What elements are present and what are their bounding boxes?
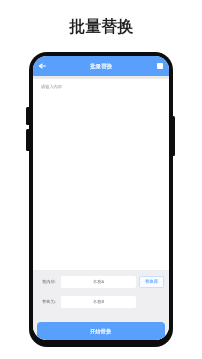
button[interactable]: Back <box>36 60 48 72</box>
staticText: 批量替换 <box>69 17 133 37</box>
staticText: 批量替换 <box>90 63 113 70</box>
button[interactable]: 开始替换 <box>37 322 165 340</box>
staticText: 替换为: <box>42 299 56 305</box>
button[interactable]: 替换库 <box>139 276 164 288</box>
button[interactable]: Menu <box>155 61 165 71</box>
staticText: 替换库 <box>145 279 159 285</box>
staticText: 开始替换 <box>90 328 112 335</box>
staticText: 将内容: <box>42 279 56 285</box>
button[interactable]: 名称A <box>61 276 136 288</box>
staticText: 名称A <box>93 279 105 285</box>
staticText: 名称B <box>93 299 105 305</box>
staticText: 请输入内容 <box>41 84 62 89</box>
button[interactable]: 名称B <box>61 296 136 308</box>
